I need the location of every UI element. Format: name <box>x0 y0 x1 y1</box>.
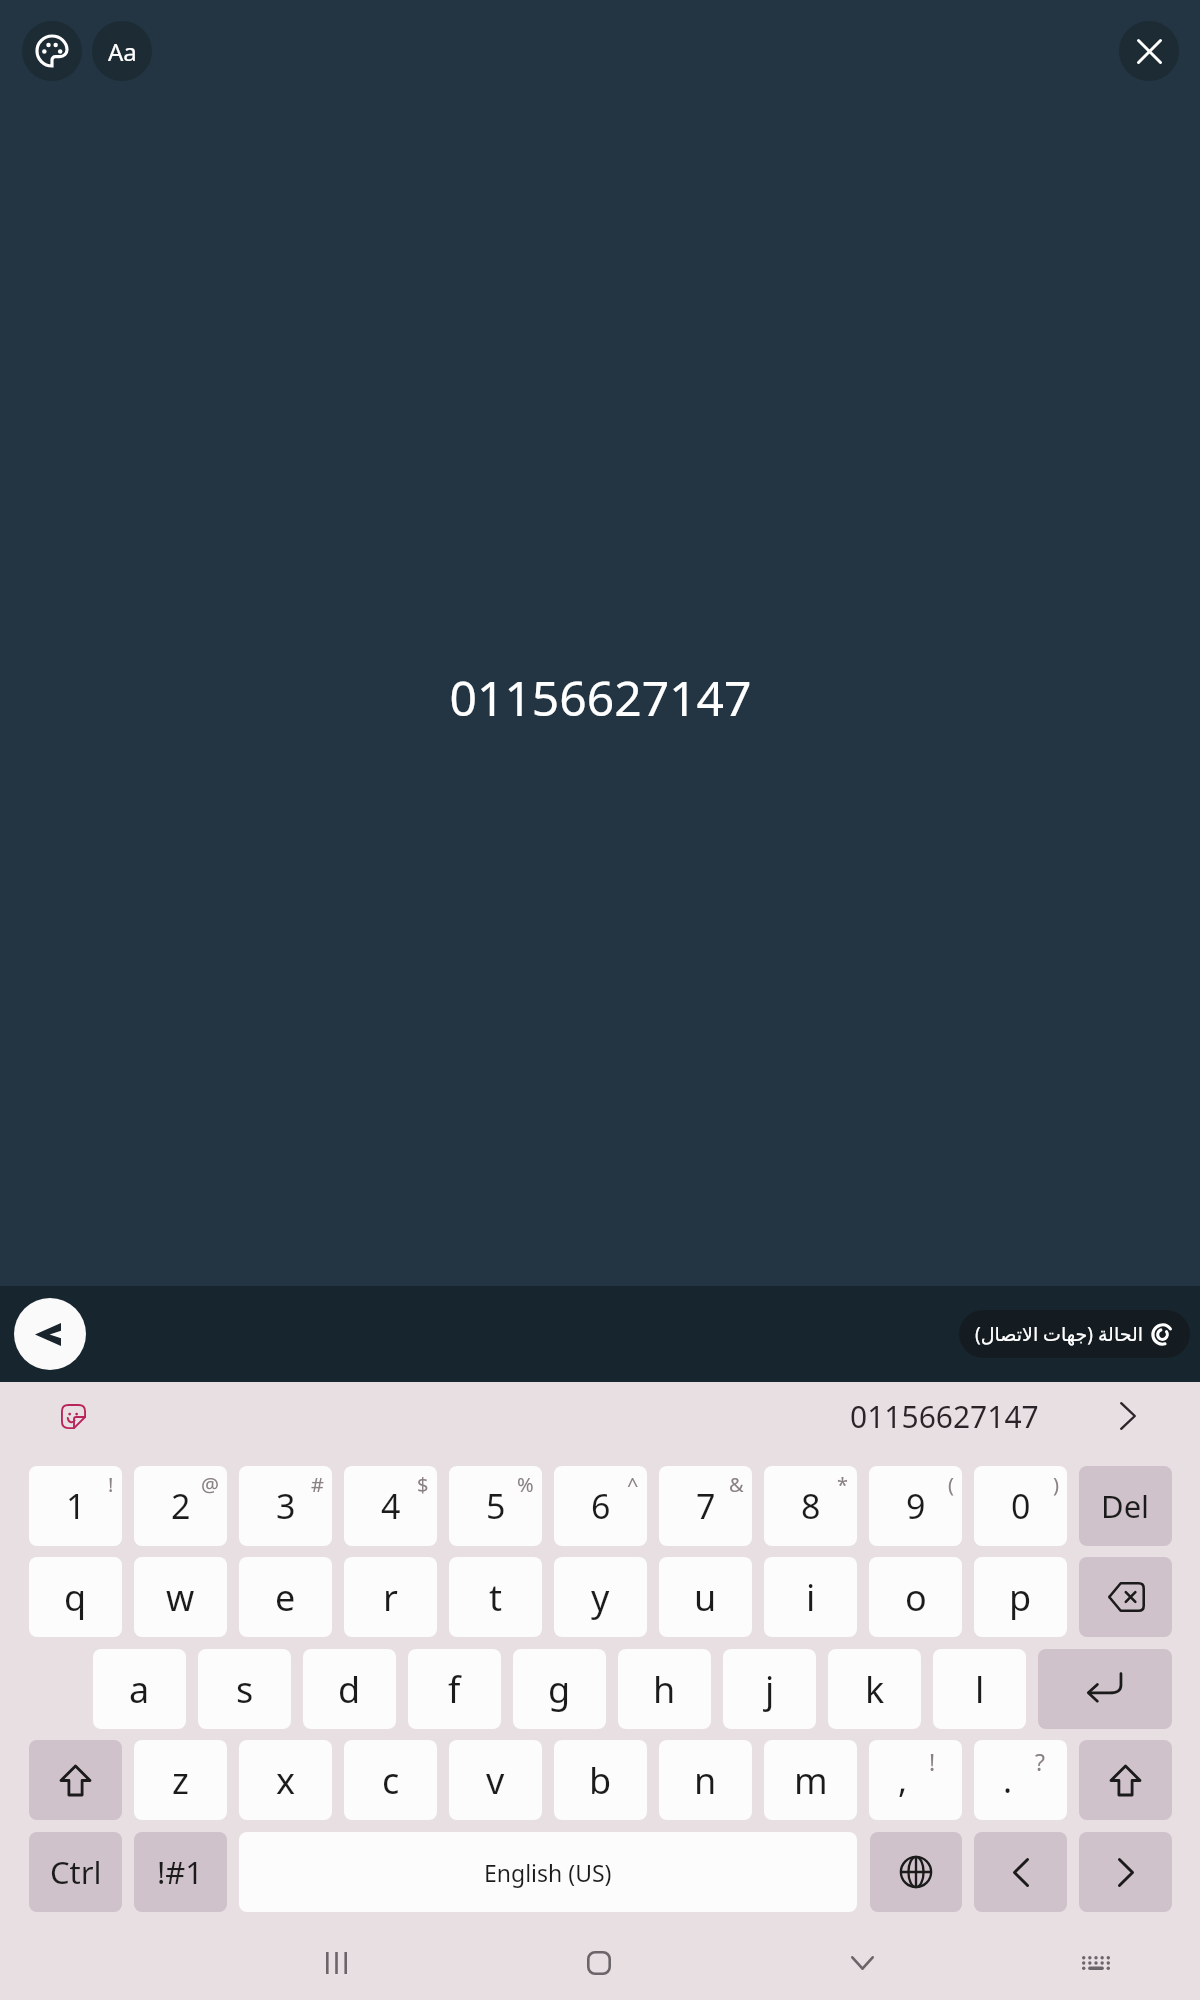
button[interactable]: Move cursor right <box>1079 1832 1172 1912</box>
staticText: & <box>729 1471 744 1498</box>
button[interactable]: 3 <box>239 1466 332 1546</box>
staticText: 6 <box>591 1483 611 1529</box>
button[interactable]: Theme <box>22 21 82 81</box>
button[interactable]: More suggestions <box>1100 1388 1156 1444</box>
staticText: @ <box>201 1471 219 1498</box>
button[interactable]: 7 <box>659 1466 752 1546</box>
staticText: 01156627147 <box>449 665 752 730</box>
button[interactable]: n <box>659 1740 752 1820</box>
button[interactable]: s <box>198 1649 291 1729</box>
staticText: ^ <box>627 1471 639 1498</box>
button[interactable]: p <box>974 1557 1067 1637</box>
staticText: o <box>905 1573 927 1622</box>
staticText: c <box>382 1756 400 1805</box>
button[interactable]: Switch keyboard <box>1068 1935 1124 1991</box>
staticText: ! <box>929 1746 936 1777</box>
staticText: r <box>383 1573 398 1622</box>
staticText: English (US) <box>484 1857 612 1888</box>
button[interactable]: Recents <box>308 1935 364 1991</box>
staticText: a <box>129 1665 150 1714</box>
button[interactable]: l <box>933 1649 1026 1729</box>
staticText: f <box>448 1665 461 1714</box>
staticText: q <box>64 1573 87 1622</box>
staticText: z <box>172 1756 189 1805</box>
button[interactable]: 0 <box>974 1466 1067 1546</box>
button[interactable]: 4 <box>344 1466 437 1546</box>
button[interactable]: 8 <box>764 1466 857 1546</box>
staticText: , <box>898 1757 908 1803</box>
button[interactable]: r <box>344 1557 437 1637</box>
button[interactable]: Enter <box>1038 1649 1172 1729</box>
button[interactable]: Change keyboard language <box>870 1832 962 1912</box>
button[interactable]: 1 <box>29 1466 122 1546</box>
button[interactable]: o <box>869 1557 962 1637</box>
button[interactable]: m <box>764 1740 857 1820</box>
button[interactable]: !#1 <box>134 1832 227 1912</box>
staticText: 0 <box>1011 1483 1031 1529</box>
button[interactable]: Move cursor left <box>974 1832 1067 1912</box>
button[interactable]: 01156627147 <box>0 665 1200 730</box>
staticText: g <box>548 1665 571 1714</box>
staticText: t <box>489 1573 502 1622</box>
staticText: w <box>166 1573 195 1622</box>
button[interactable]: Back <box>14 1298 86 1370</box>
button[interactable]: Shift <box>29 1740 122 1820</box>
staticText: m <box>794 1756 828 1805</box>
button[interactable]: q <box>29 1557 122 1637</box>
staticText: ! <box>108 1471 114 1498</box>
button[interactable]: Close <box>1119 21 1179 81</box>
button[interactable]: Shift <box>1079 1740 1172 1820</box>
staticText: 2 <box>171 1483 191 1529</box>
button[interactable]: 01156627147 <box>850 1396 1039 1437</box>
staticText: y <box>591 1573 610 1622</box>
button[interactable]: English (US) <box>239 1832 857 1912</box>
button[interactable]: 6 <box>554 1466 647 1546</box>
button[interactable]: Backspace <box>1079 1557 1172 1637</box>
staticText: s <box>236 1665 254 1714</box>
button[interactable]: , <box>869 1740 962 1820</box>
button[interactable]: Ctrl <box>29 1832 122 1912</box>
staticText: 7 <box>696 1483 716 1529</box>
button[interactable]: 2 <box>134 1466 227 1546</box>
button[interactable]: e <box>239 1557 332 1637</box>
button[interactable]: i <box>764 1557 857 1637</box>
button[interactable]: Del <box>1079 1466 1172 1546</box>
button[interactable]: g <box>513 1649 606 1729</box>
button[interactable]: . <box>974 1740 1067 1820</box>
button[interactable]: z <box>134 1740 227 1820</box>
button[interactable]: u <box>659 1557 752 1637</box>
button[interactable]: j <box>723 1649 816 1729</box>
staticText: الحالة (جهات الاتصال) <box>975 1321 1144 1347</box>
button[interactable]: w <box>134 1557 227 1637</box>
button[interactable]: c <box>344 1740 437 1820</box>
button[interactable]: Hide keyboard <box>834 1935 890 1991</box>
button[interactable]: x <box>239 1740 332 1820</box>
button[interactable]: Aa <box>92 21 152 81</box>
button[interactable]: 5 <box>449 1466 542 1546</box>
button[interactable]: f <box>408 1649 501 1729</box>
staticText: l <box>975 1665 985 1714</box>
staticText: 3 <box>276 1483 296 1529</box>
button[interactable]: a <box>93 1649 186 1729</box>
button[interactable]: d <box>303 1649 396 1729</box>
button[interactable]: 9 <box>869 1466 962 1546</box>
staticText: e <box>275 1573 296 1622</box>
staticText: !#1 <box>157 1851 204 1893</box>
button[interactable]: Home <box>571 1935 627 1991</box>
staticText: ) <box>1053 1471 1059 1498</box>
button[interactable]: Stickers <box>50 1393 96 1439</box>
staticText: 9 <box>906 1483 926 1529</box>
staticText: i <box>806 1573 816 1622</box>
button[interactable]: y <box>554 1557 647 1637</box>
button[interactable]: الحالة (جهات الاتصال) <box>959 1310 1190 1358</box>
button[interactable]: b <box>554 1740 647 1820</box>
staticText: v <box>486 1756 505 1805</box>
staticText: b <box>589 1756 612 1805</box>
button[interactable]: k <box>828 1649 921 1729</box>
button[interactable]: t <box>449 1557 542 1637</box>
staticText: Del <box>1101 1485 1150 1527</box>
button[interactable]: h <box>618 1649 711 1729</box>
staticText: 8 <box>801 1483 821 1529</box>
button[interactable]: v <box>449 1740 542 1820</box>
staticText: * <box>837 1471 849 1498</box>
